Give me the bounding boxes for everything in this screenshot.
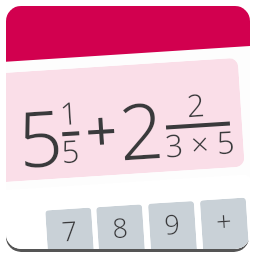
staticText: 7 — [60, 211, 79, 249]
button[interactable]: 9 — [148, 201, 198, 249]
staticText: 8 — [111, 208, 130, 246]
staticText: 3 × 5 — [164, 120, 236, 167]
staticText: 9 — [163, 205, 181, 243]
button[interactable]: 8 — [96, 204, 147, 249]
staticText: 2 — [185, 83, 206, 126]
staticText: 5 — [15, 83, 66, 191]
staticText: 1 — [59, 91, 79, 134]
staticText: 5 — [60, 129, 81, 172]
staticText: + — [215, 201, 233, 239]
button[interactable]: + — [200, 197, 250, 249]
staticText: 2 — [116, 76, 166, 183]
button[interactable]: 7 — [45, 207, 96, 249]
